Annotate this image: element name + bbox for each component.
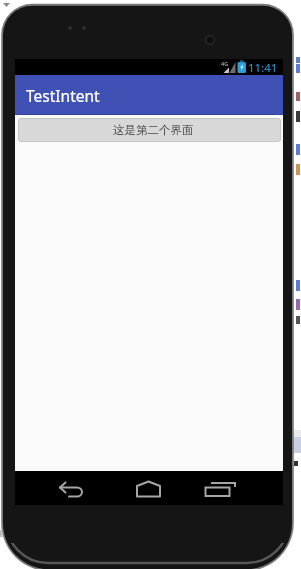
button[interactable]: 这是第二个界面 [18, 118, 281, 142]
button[interactable] [132, 477, 164, 501]
staticText: 这是第二个界面 [113, 123, 194, 137]
staticText: TestIntent [26, 85, 100, 106]
button[interactable] [55, 477, 87, 501]
button[interactable] [201, 477, 237, 501]
staticText: 11:41 [248, 60, 278, 76]
staticText: 4G [221, 60, 229, 67]
